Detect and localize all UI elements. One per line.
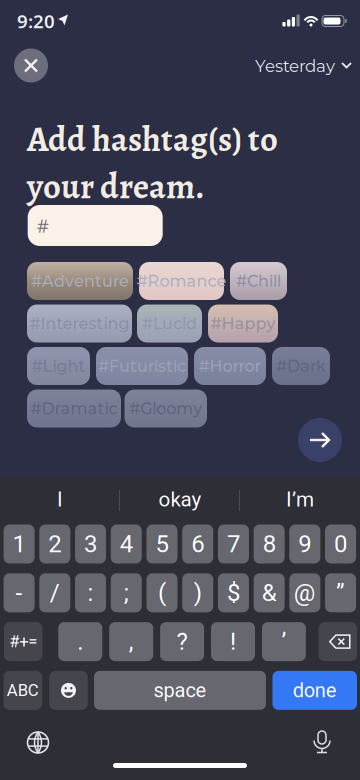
button[interactable]: ! (211, 622, 255, 661)
button[interactable]: : (75, 573, 106, 612)
staticText: ” (336, 579, 345, 607)
button[interactable]: I’m (286, 487, 314, 512)
staticText: #Romance (136, 271, 226, 291)
staticText: ( (158, 579, 166, 607)
button[interactable] (298, 418, 342, 462)
button[interactable]: done (272, 671, 357, 710)
button[interactable]: ; (111, 573, 142, 612)
staticText: #Light (31, 356, 85, 376)
staticText: . (77, 627, 83, 656)
staticText: 8 (263, 530, 276, 558)
staticText: #Horror (198, 356, 261, 376)
button[interactable]: 5 (146, 524, 177, 563)
button[interactable]: . (58, 622, 102, 661)
staticText: #Chill (236, 271, 281, 291)
staticText: #Dramatic (30, 399, 117, 418)
staticText: 5 (155, 530, 168, 558)
button[interactable]: 6 (182, 524, 213, 563)
button[interactable]: ? (160, 622, 204, 661)
button[interactable]: #Adventure (27, 262, 133, 300)
button[interactable]: 7 (218, 524, 249, 563)
button[interactable]: @ (289, 573, 320, 612)
staticText: # (37, 213, 49, 238)
staticText: : (87, 579, 93, 607)
button[interactable] (49, 671, 88, 710)
staticText: I (57, 487, 63, 512)
button[interactable]: #Gloomy (124, 389, 207, 427)
button[interactable]: $ (218, 573, 249, 612)
button[interactable]: , (109, 622, 153, 661)
staticText: I’m (286, 487, 314, 512)
staticText: #Futuristic (98, 356, 186, 376)
button[interactable]: okay (158, 487, 201, 512)
staticText: & (262, 579, 277, 607)
staticText: #Gloomy (129, 399, 202, 418)
button[interactable] (14, 48, 48, 82)
staticText: / (50, 579, 60, 607)
button[interactable]: #Dramatic (27, 389, 121, 427)
staticText: 9 (298, 530, 311, 558)
button[interactable]: 2 (39, 524, 70, 563)
staticText: 9:20 (17, 9, 55, 33)
button[interactable]: #Light (27, 347, 90, 385)
button[interactable]: #Romance (139, 262, 224, 300)
button[interactable]: #Futuristic (96, 347, 188, 385)
button[interactable]: 8 (254, 524, 285, 563)
button[interactable]: / (39, 573, 70, 612)
staticText: okay (158, 487, 201, 512)
staticText: @ (294, 579, 316, 607)
button[interactable]: 0 (325, 524, 356, 563)
button[interactable]: - (4, 573, 35, 612)
staticText: #Happy (210, 314, 275, 333)
staticText: #Lucid (142, 314, 197, 333)
staticText: done (293, 679, 337, 702)
staticText: Yesterday (255, 56, 335, 76)
staticText: 4 (120, 530, 133, 558)
staticText: , (129, 627, 134, 656)
staticText: #Interesting (29, 314, 129, 333)
staticText: - (16, 579, 23, 607)
staticText: Add hashtag(s) to your dream. (27, 116, 278, 210)
staticText: ; (124, 579, 129, 607)
button[interactable]: 4 (111, 524, 142, 563)
button[interactable]: #Chill (230, 262, 287, 300)
button[interactable]: 3 (75, 524, 106, 563)
staticText: ’ (281, 627, 286, 656)
staticText: $ (227, 579, 240, 607)
button[interactable]: #Happy (208, 304, 278, 342)
staticText: 0 (334, 530, 347, 558)
staticText: space (153, 679, 206, 702)
button[interactable]: ” (325, 573, 356, 612)
staticText: 1 (13, 530, 26, 558)
button[interactable]: #Dark (272, 347, 330, 385)
staticText: 6 (191, 530, 204, 558)
button[interactable] (319, 622, 357, 661)
staticText: #Adventure (31, 271, 129, 291)
button[interactable] (310, 729, 334, 755)
staticText: #+= (9, 632, 37, 651)
button[interactable]: #Lucid (137, 304, 202, 342)
button[interactable] (26, 731, 49, 754)
button[interactable]: ABC (4, 671, 42, 710)
button[interactable]: & (254, 573, 285, 612)
button[interactable]: Yesterday (255, 56, 352, 76)
button[interactable]: space (94, 671, 266, 710)
button[interactable]: ) (182, 573, 213, 612)
staticText: ? (177, 627, 188, 656)
staticText: ) (194, 579, 202, 607)
button[interactable]: #Horror (194, 347, 266, 385)
staticText: 3 (84, 530, 97, 558)
button[interactable]: #+= (4, 622, 42, 661)
button[interactable]: 9 (289, 524, 320, 563)
button[interactable]: I (57, 487, 63, 512)
staticText: #Dark (276, 356, 326, 376)
button[interactable]: ( (146, 573, 177, 612)
staticText: 7 (227, 530, 240, 558)
staticText: ! (230, 627, 236, 656)
button[interactable]: 1 (4, 524, 35, 563)
button[interactable]: ’ (262, 622, 306, 661)
staticText: ABC (7, 681, 39, 700)
staticText: 2 (48, 530, 61, 558)
button[interactable]: #Interesting (27, 304, 132, 342)
